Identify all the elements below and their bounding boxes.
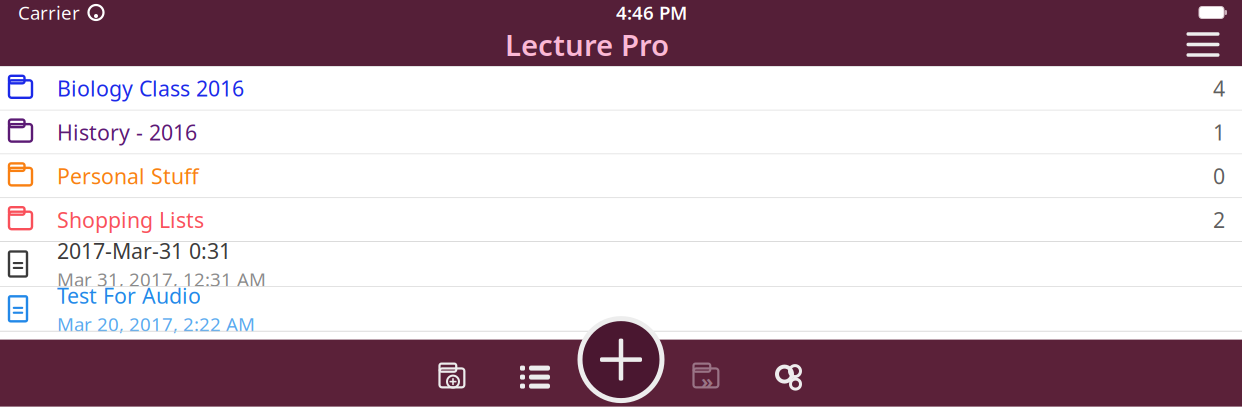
- staticText: 2: [1213, 205, 1225, 234]
- button[interactable]: New Folder: [412, 352, 494, 402]
- staticText: 2017-Mar-31 0:31: [57, 236, 231, 265]
- staticText: 1: [1213, 118, 1225, 146]
- staticText: 4:46 PM: [616, 0, 687, 25]
- button[interactable]: History - 2016: [0, 111, 1242, 154]
- staticText: Personal Stuff: [57, 162, 199, 190]
- staticText: »: [701, 368, 713, 394]
- staticText: Carrier: [18, 0, 80, 25]
- staticText: 0: [1213, 162, 1225, 190]
- staticText: Mar 31, 2017, 12:31 AM: [57, 267, 266, 292]
- staticText: Shopping Lists: [57, 205, 204, 234]
- button[interactable]: Personal Stuff: [0, 154, 1242, 198]
- staticText: Test For Audio: [57, 281, 201, 309]
- button[interactable]: Shopping Lists: [0, 198, 1242, 242]
- button[interactable]: Add: [580, 319, 662, 401]
- staticText: 4: [1213, 74, 1225, 102]
- button[interactable]: Test For Audio: [0, 287, 1242, 332]
- staticText: Mar 20, 2017, 2:22 AM: [57, 312, 255, 336]
- staticText: History - 2016: [57, 118, 197, 146]
- button[interactable]: List: [494, 352, 576, 402]
- staticText: Lecture Pro: [505, 25, 669, 64]
- button[interactable]: Move to Folder: [666, 352, 748, 402]
- staticText: Biology Class 2016: [57, 74, 244, 102]
- button[interactable]: Settings: [748, 352, 830, 402]
- button[interactable]: Menu: [1174, 22, 1232, 66]
- button[interactable]: Biology Class 2016: [0, 67, 1242, 111]
- button[interactable]: 2017-Mar-31 0:31: [0, 242, 1242, 287]
